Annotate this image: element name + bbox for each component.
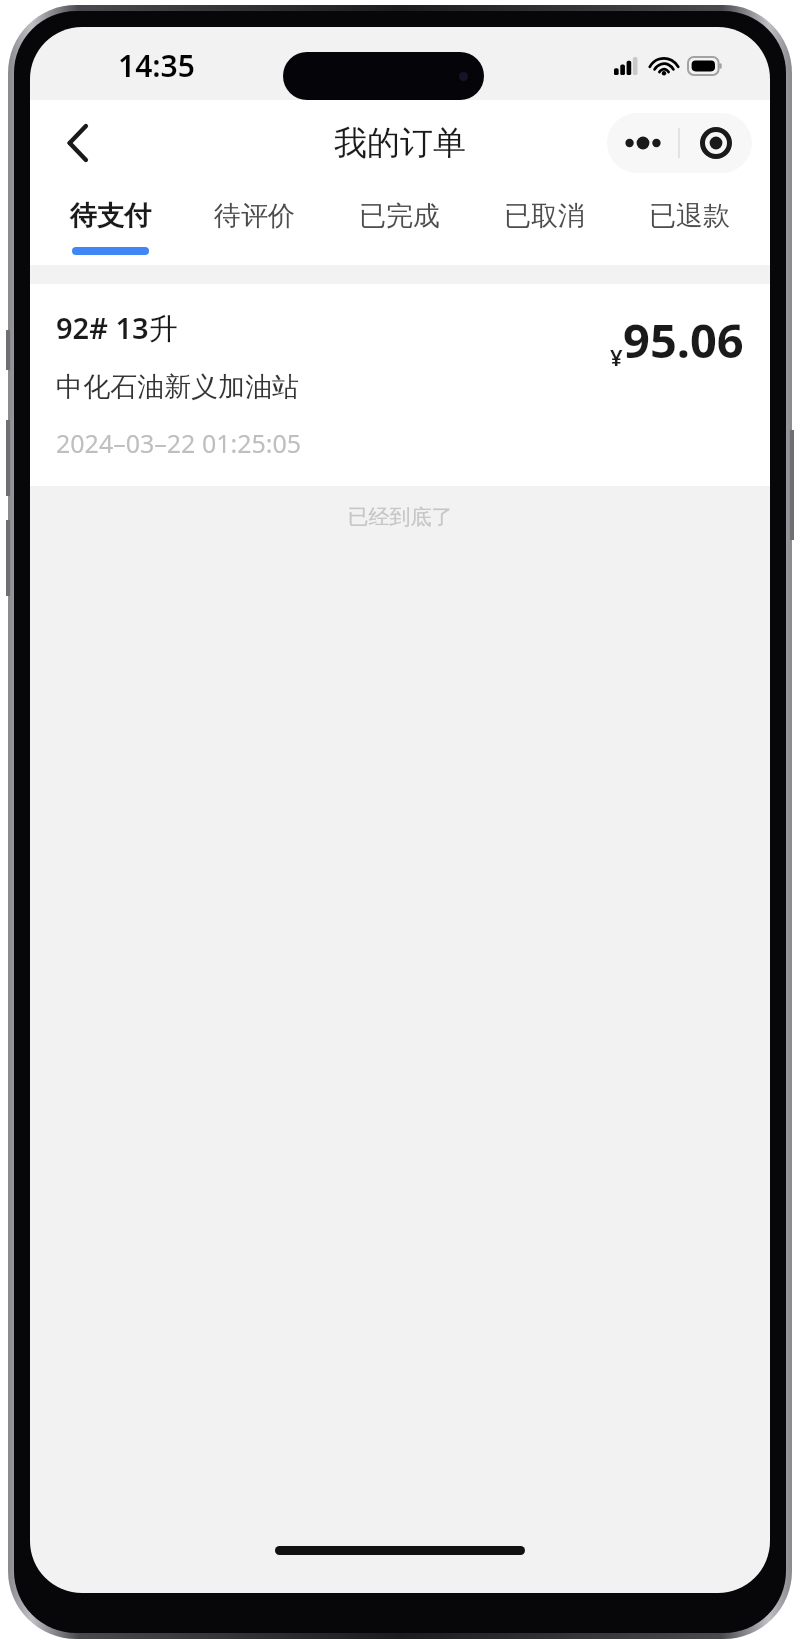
staticText: 已完成	[359, 199, 440, 233]
button[interactable]: 已完成	[327, 185, 472, 265]
staticText: ¥	[610, 342, 623, 372]
button[interactable]: 已退款	[617, 185, 762, 265]
button[interactable]: 已取消	[472, 185, 617, 265]
staticText: 中化石油新义加油站	[56, 370, 299, 404]
staticText: 已经到底了	[30, 504, 770, 530]
staticText: 待支付	[70, 199, 151, 233]
staticText: 95.06	[623, 308, 744, 372]
staticText: 已退款	[649, 199, 730, 233]
staticText: 92# 13升	[56, 308, 178, 348]
button[interactable]: 菜单	[607, 113, 678, 173]
staticText: 2024–03–22 01:25:05	[56, 426, 302, 460]
staticText: 已取消	[504, 199, 585, 233]
button[interactable]: 返回	[50, 115, 106, 171]
button[interactable]: 待评价	[182, 185, 327, 265]
button[interactable]: 待支付	[38, 185, 182, 265]
staticText: 14:35	[118, 45, 195, 86]
button[interactable]: 关闭	[680, 113, 752, 173]
button[interactable]: 92# 13升	[30, 284, 770, 486]
staticText: 我的订单	[334, 122, 466, 164]
staticText: 待评价	[214, 199, 295, 233]
